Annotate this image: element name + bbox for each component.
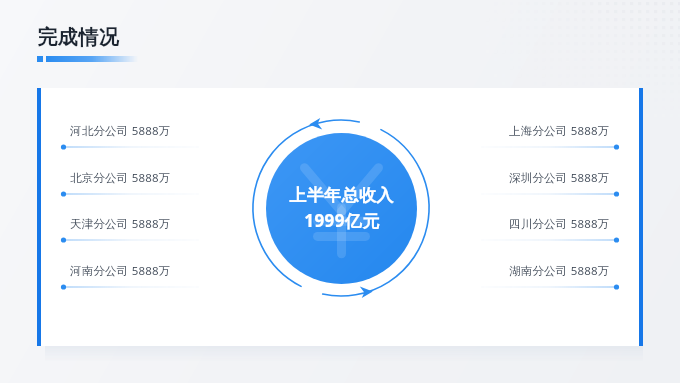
button[interactable]: 四川分公司 5888万	[481, 214, 618, 244]
staticText: 天津分公司 5888万	[70, 216, 171, 232]
staticText: 上半年总收入	[289, 185, 394, 206]
staticText: 河北分公司 5888万	[70, 123, 171, 139]
button[interactable]: 天津分公司 5888万	[62, 214, 199, 244]
staticText: 深圳分公司 5888万	[509, 170, 610, 186]
staticText: 上海分公司 5888万	[509, 123, 610, 139]
button[interactable]: 深圳分公司 5888万	[481, 168, 618, 198]
button[interactable]: 上海分公司 5888万	[481, 121, 618, 151]
staticText: 完成情况	[37, 25, 119, 50]
button[interactable]: 河南分公司 5888万	[62, 261, 199, 291]
staticText: 四川分公司 5888万	[509, 216, 610, 232]
staticText: 河南分公司 5888万	[70, 263, 171, 279]
staticText: 北京分公司 5888万	[70, 170, 171, 186]
staticText: 1999亿元	[304, 209, 380, 232]
staticText: 湖南分公司 5888万	[509, 263, 610, 279]
button[interactable]: 湖南分公司 5888万	[481, 261, 618, 291]
button[interactable]: 河北分公司 5888万	[62, 121, 199, 151]
button[interactable]: 上半年总收入 1999亿元	[266, 133, 417, 284]
button[interactable]: 北京分公司 5888万	[62, 168, 199, 198]
